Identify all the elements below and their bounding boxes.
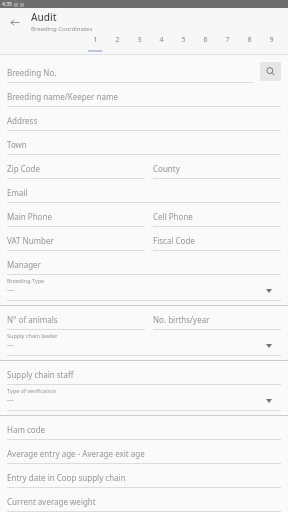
staticText: Breeding No. — [7, 67, 57, 78]
button[interactable]: Email — [7, 179, 281, 203]
staticText: --- — [7, 285, 14, 295]
staticText: Email — [7, 187, 28, 198]
staticText: 4:35 — [2, 1, 12, 8]
button[interactable]: Breeding Type — [0, 275, 288, 300]
button[interactable]: 1 — [84, 35, 106, 54]
button[interactable]: VAT Number — [7, 227, 145, 251]
button[interactable]: Search — [260, 62, 281, 81]
staticText: Breeding Type — [7, 277, 45, 284]
button[interactable]: Main Phone — [7, 203, 145, 227]
staticText: Ham code — [7, 424, 46, 435]
button[interactable]: County — [153, 155, 281, 179]
staticText: 1 — [93, 35, 98, 45]
button[interactable]: 2 — [106, 35, 128, 54]
staticText: Supply chain staff — [7, 369, 74, 380]
staticText: Address — [7, 115, 38, 126]
button[interactable]: Supply chain leader — [0, 330, 288, 355]
staticText: Breeding name/Keeper name — [7, 91, 118, 102]
button[interactable]: No. births/year — [153, 306, 281, 330]
button[interactable]: 6 — [194, 35, 216, 54]
staticText: Manager — [7, 259, 41, 270]
staticText: Cell Phone — [153, 211, 193, 222]
staticText: Main Phone — [7, 211, 52, 222]
staticText: Audit — [31, 10, 57, 24]
staticText: Zip Code — [7, 163, 40, 174]
staticText: 7 — [225, 35, 230, 45]
staticText: 2 — [115, 35, 120, 45]
button[interactable]: Cell Phone — [153, 203, 281, 227]
staticText: --- — [7, 395, 14, 405]
staticText: Fiscal Code — [153, 235, 195, 246]
staticText: 9 — [269, 35, 274, 45]
staticText: Supply chain leader — [7, 332, 58, 339]
button[interactable]: Manager — [7, 251, 281, 275]
staticText: Average entry age - Average exit age — [7, 448, 145, 459]
button[interactable]: 3 — [128, 35, 150, 54]
staticText: Breeding Coordinates — [31, 25, 93, 33]
staticText: County — [153, 163, 180, 174]
button[interactable]: Supply chain staff — [7, 361, 281, 385]
button[interactable]: N° of animals — [7, 306, 145, 330]
staticText: 3 — [137, 35, 142, 45]
staticText: N° of animals — [7, 314, 58, 325]
button[interactable]: Zip Code — [7, 155, 145, 179]
button[interactable]: 4 — [150, 35, 172, 54]
staticText: Current average weight — [7, 496, 96, 507]
staticText: Town — [7, 139, 27, 150]
button[interactable]: Average entry age - Average exit age — [7, 440, 281, 464]
button[interactable]: 9 — [260, 35, 282, 54]
button[interactable]: Type of verification — [0, 385, 288, 410]
button[interactable]: 8 — [238, 35, 260, 54]
button[interactable]: Address — [7, 107, 281, 131]
button[interactable]: 5 — [172, 35, 194, 54]
button[interactable]: Breeding name/Keeper name — [7, 83, 281, 107]
staticText: Entry date in Coop supply chain — [7, 472, 126, 483]
staticText: VAT Number — [7, 235, 54, 246]
staticText: 8 — [247, 35, 252, 45]
button[interactable]: Current average weight — [7, 488, 281, 512]
button[interactable]: 7 — [216, 35, 238, 54]
button[interactable]: Breeding No. — [7, 59, 254, 83]
staticText: Type of verification — [7, 387, 57, 394]
staticText: --- — [7, 340, 14, 350]
staticText: No. births/year — [153, 314, 210, 325]
button[interactable]: Fiscal Code — [153, 227, 281, 251]
button[interactable]: Back — [7, 14, 23, 30]
staticText: 5 — [181, 35, 186, 45]
staticText: 6 — [203, 35, 208, 45]
button[interactable]: Ham code — [7, 416, 281, 440]
button[interactable]: Entry date in Coop supply chain — [7, 464, 281, 488]
button[interactable]: Town — [7, 131, 281, 155]
staticText: 4 — [159, 35, 164, 45]
